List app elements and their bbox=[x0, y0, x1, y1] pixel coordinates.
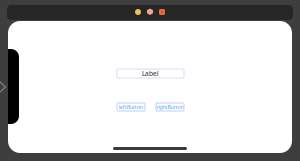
staticText: Label bbox=[142, 69, 159, 78]
button[interactable]: leftButton bbox=[117, 103, 145, 111]
button[interactable]: rightButton bbox=[156, 103, 184, 111]
staticText: rightButton bbox=[156, 103, 183, 111]
staticText: leftButton bbox=[119, 103, 143, 111]
